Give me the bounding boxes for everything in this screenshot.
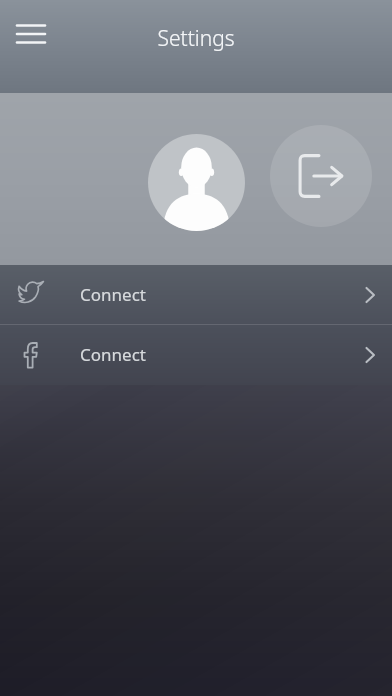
button[interactable]: Facebook Connect (0, 325, 392, 384)
button[interactable]: Twitter Connect (0, 265, 392, 324)
staticText: Settings (0, 24, 392, 53)
staticText: Connect (80, 343, 146, 366)
button[interactable]: Profile photo (148, 134, 245, 231)
button[interactable]: Sign out (270, 125, 372, 227)
staticText: Connect (80, 283, 146, 306)
button[interactable]: Menu (8, 14, 54, 60)
